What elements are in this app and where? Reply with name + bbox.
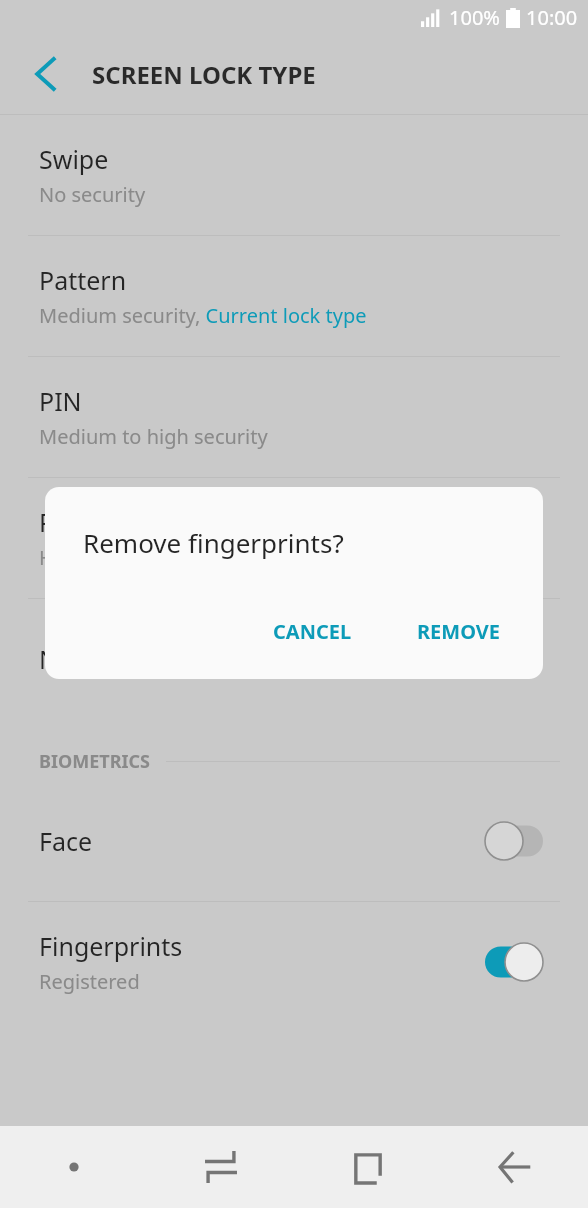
staticText: 10:00 <box>526 4 578 31</box>
staticText: Remove fingerprints? <box>83 525 344 560</box>
button[interactable]: Recents <box>147 1126 294 1208</box>
staticText: PIN <box>39 384 82 418</box>
button[interactable]: Pattern <box>0 236 588 356</box>
staticText: Fingerprints <box>39 929 183 963</box>
button[interactable]: Home <box>294 1126 441 1208</box>
button[interactable]: Menu <box>0 1126 147 1208</box>
button[interactable]: REMOVE <box>413 612 504 651</box>
button[interactable]: Face <box>0 781 588 901</box>
staticText: 100% <box>449 4 500 31</box>
button[interactable]: PIN <box>0 357 588 477</box>
button[interactable]: CANCEL <box>269 612 356 651</box>
staticText: BIOMETRICS <box>39 749 150 774</box>
staticText: Medium to high security <box>39 423 268 450</box>
staticText: SCREEN LOCK TYPE <box>92 58 316 91</box>
staticText: High security <box>39 544 163 571</box>
staticText: REMOVE <box>417 618 500 645</box>
staticText: None <box>39 642 103 676</box>
button[interactable]: Off <box>485 821 543 861</box>
button[interactable]: On <box>485 942 543 982</box>
button[interactable]: Back <box>22 50 70 98</box>
staticText: Face <box>39 824 93 858</box>
staticText: Password <box>39 505 153 539</box>
button[interactable]: Swipe <box>0 115 588 235</box>
button[interactable]: Password <box>0 478 588 598</box>
staticText: Medium security, Current lock type <box>39 302 367 329</box>
staticText: Registered <box>39 968 140 995</box>
staticText: CANCEL <box>273 618 352 645</box>
staticText: No security <box>39 181 146 208</box>
button[interactable]: None <box>0 599 588 719</box>
button[interactable]: Fingerprints <box>0 902 588 1022</box>
staticText: Pattern <box>39 263 127 297</box>
staticText: Swipe <box>39 142 109 176</box>
button[interactable]: Back <box>441 1126 588 1208</box>
